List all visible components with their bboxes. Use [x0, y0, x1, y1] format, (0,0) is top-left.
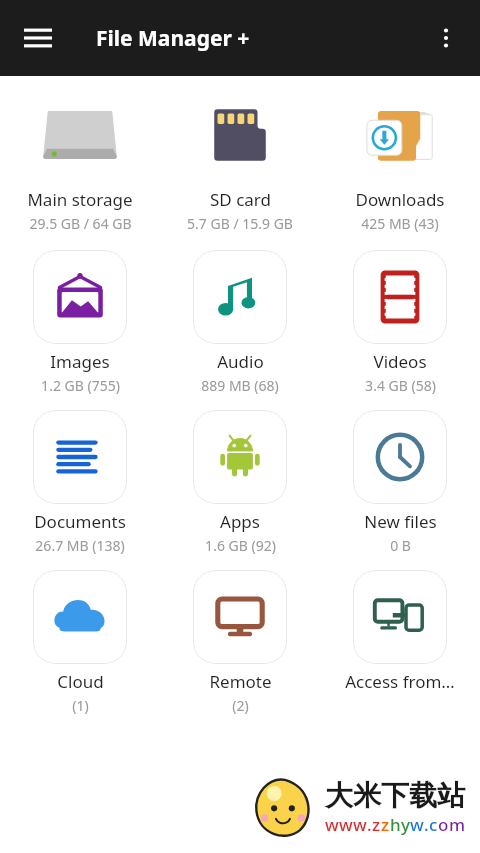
staticText: (1) — [72, 696, 89, 715]
staticText: Main storage — [27, 188, 133, 211]
staticText: 889 MB (68) — [201, 376, 279, 395]
staticText: . — [367, 813, 372, 836]
button[interactable]: More options — [420, 12, 472, 64]
staticText: z — [381, 813, 390, 836]
staticText: z — [372, 813, 381, 836]
staticText: w — [353, 813, 367, 836]
staticText: File Manager + — [96, 24, 250, 53]
staticText: SD card — [210, 188, 271, 211]
staticText: 大米下载站 — [325, 778, 465, 813]
button[interactable]: Audio — [160, 242, 320, 402]
button[interactable]: Videos — [320, 242, 480, 402]
button[interactable]: Images — [0, 242, 160, 402]
staticText: 1.2 GB (755) — [41, 376, 120, 395]
staticText: o — [438, 813, 449, 836]
button[interactable]: SD card — [160, 82, 320, 242]
staticText: w — [339, 813, 353, 836]
staticText: 1.6 GB (92) — [205, 536, 276, 555]
staticText: Audio — [217, 350, 264, 373]
staticText: New files — [364, 510, 437, 533]
staticText: m — [449, 813, 466, 836]
staticText: 425 MB (43) — [361, 214, 439, 233]
staticText: Videos — [373, 350, 427, 373]
staticText: w — [410, 813, 424, 836]
staticText: 0 B — [390, 536, 411, 555]
staticText: 26.7 MB (138) — [35, 536, 125, 555]
staticText: 3.4 GB (58) — [365, 376, 436, 395]
button[interactable]: Cloud — [0, 562, 160, 722]
staticText: Access from… — [345, 670, 455, 693]
staticText: . — [424, 813, 429, 836]
staticText: 29.5 GB / 64 GB — [29, 214, 132, 233]
staticText: h — [390, 813, 401, 836]
staticText: w — [325, 813, 339, 836]
button[interactable]: Downloads — [320, 82, 480, 242]
button[interactable]: Open navigation drawer — [10, 10, 66, 66]
button[interactable]: Main storage — [0, 82, 160, 242]
staticText: 5.7 GB / 15.9 GB — [187, 214, 293, 233]
staticText: c — [429, 813, 438, 836]
button[interactable]: Documents — [0, 402, 160, 562]
button[interactable]: Remote — [160, 562, 320, 722]
button[interactable]: Apps — [160, 402, 320, 562]
button[interactable]: Access from… — [320, 562, 480, 722]
staticText: (2) — [232, 696, 249, 715]
button[interactable]: New files — [320, 402, 480, 562]
staticText: Documents — [34, 510, 126, 533]
staticText: Remote — [209, 670, 272, 693]
staticText: y — [401, 813, 410, 836]
staticText: Apps — [220, 510, 260, 533]
staticText: Images — [50, 350, 110, 373]
staticText: Downloads — [355, 188, 445, 211]
staticText: Cloud — [57, 670, 104, 693]
